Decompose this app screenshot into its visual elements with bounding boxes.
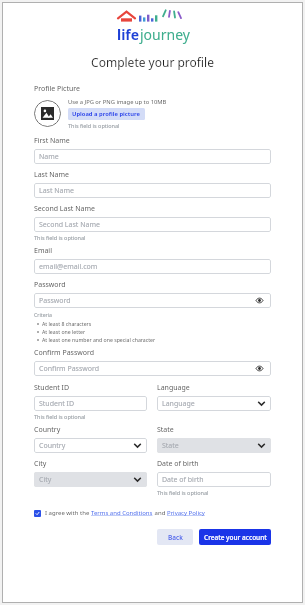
staticText: State xyxy=(162,441,257,451)
staticText: Use a JPG or PNG image up to 10MB xyxy=(68,98,167,106)
button[interactable]: email@email.com xyxy=(34,259,271,274)
button[interactable]: Upload a profile picture xyxy=(68,108,145,120)
staticText: Password xyxy=(34,280,66,290)
staticText: Password xyxy=(39,296,252,306)
button[interactable]: Show password xyxy=(252,293,266,308)
staticText: Confirm Password xyxy=(34,348,95,358)
staticText: This field is optional xyxy=(34,413,86,420)
button[interactable]: Second Last Name xyxy=(34,217,271,232)
staticText: Email xyxy=(34,246,52,256)
staticText: This field is optional xyxy=(157,489,209,496)
staticText: Upload a profile picture xyxy=(72,110,141,118)
staticText: Back xyxy=(168,533,183,542)
button[interactable]: I agree with the xyxy=(34,509,271,517)
button[interactable]: Profile picture xyxy=(34,100,61,127)
button[interactable]: Privacy Policy xyxy=(167,509,205,517)
staticText: I agree with the xyxy=(45,509,91,517)
staticText: Country xyxy=(39,441,133,451)
staticText: and xyxy=(153,509,167,517)
staticText: Date of birth xyxy=(162,475,266,485)
button[interactable]: Terms and Conditions xyxy=(91,509,153,517)
staticText: Criteria xyxy=(34,311,52,318)
button[interactable]: Student ID xyxy=(34,396,147,411)
staticText: At least one letter xyxy=(42,328,86,335)
staticText: City xyxy=(34,459,47,469)
staticText: Country xyxy=(34,425,61,435)
staticText: Profile Picture xyxy=(34,84,80,94)
staticText: This field is optional xyxy=(68,122,120,129)
staticText: Last Name xyxy=(34,170,70,180)
button[interactable]: Country xyxy=(34,438,147,453)
button[interactable]: Create your account xyxy=(199,529,271,545)
staticText: Date of birth xyxy=(157,459,199,469)
staticText: Complete your profile xyxy=(2,54,303,70)
button[interactable]: Language xyxy=(157,396,271,411)
button[interactable]: Password xyxy=(34,293,271,308)
staticText: State xyxy=(157,425,174,435)
button[interactable]: Show password xyxy=(252,361,266,376)
staticText: Language xyxy=(157,383,190,393)
staticText: life xyxy=(117,25,140,44)
staticText: At least 8 characters xyxy=(42,320,92,327)
staticText: Name xyxy=(39,152,266,162)
staticText: journey xyxy=(140,25,190,44)
staticText: City xyxy=(39,475,133,485)
button[interactable]: Date of birth xyxy=(157,472,271,487)
button[interactable]: State xyxy=(157,438,271,453)
staticText: Create your account xyxy=(204,533,267,542)
button[interactable]: Last Name xyxy=(34,183,271,198)
button[interactable]: City xyxy=(34,472,147,487)
staticText: At least one number and one special char… xyxy=(42,336,156,343)
staticText: email@email.com xyxy=(39,262,266,272)
staticText: First Name xyxy=(34,136,70,146)
staticText: Student ID xyxy=(34,383,70,393)
staticText: Second Last Name xyxy=(34,204,95,214)
button[interactable]: Confirm Password xyxy=(34,361,271,376)
staticText: Second Last Name xyxy=(39,220,266,230)
staticText: Student ID xyxy=(39,399,142,409)
staticText: Language xyxy=(162,399,257,409)
button[interactable]: Back xyxy=(157,529,193,545)
staticText: Last Name xyxy=(39,186,266,196)
staticText: This field is optional xyxy=(34,234,86,241)
button[interactable]: Name xyxy=(34,149,271,164)
staticText: Confirm Password xyxy=(39,364,252,374)
